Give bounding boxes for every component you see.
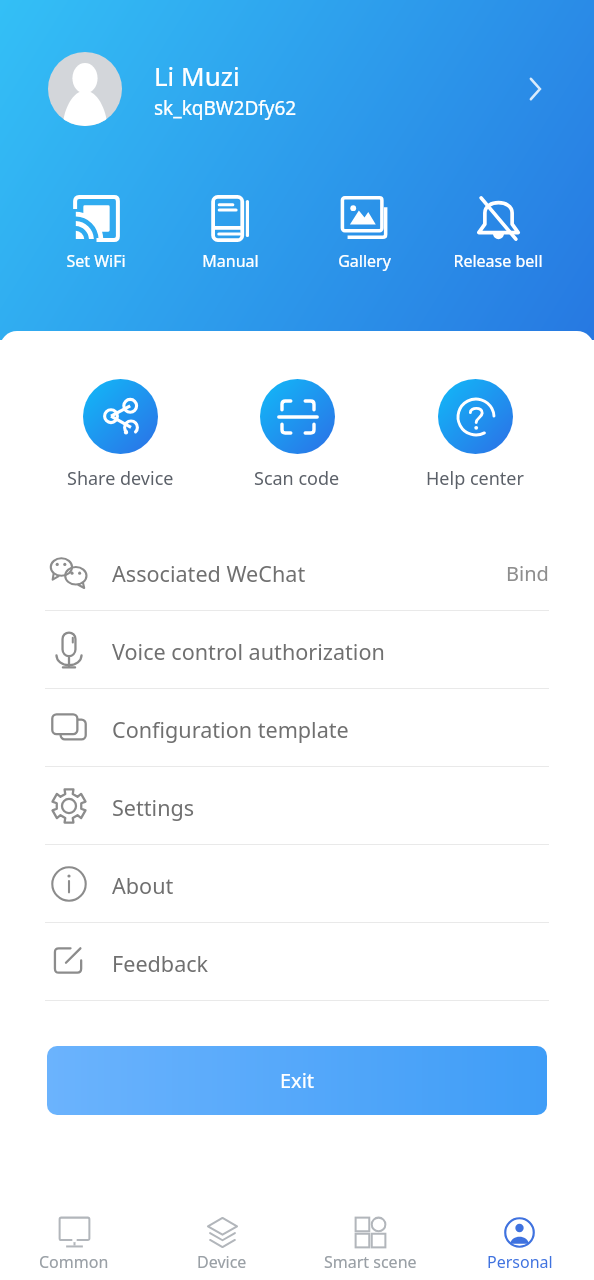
- button[interactable]: Settings: [45, 767, 549, 844]
- staticText: Smart scene: [324, 1251, 417, 1273]
- button[interactable]: Personal: [445, 1192, 594, 1280]
- staticText: Li Muzi: [154, 58, 240, 93]
- staticText: Associated WeChat: [112, 559, 506, 588]
- staticText: About: [112, 871, 549, 900]
- staticText: Personal: [487, 1251, 553, 1273]
- staticText: Help center: [426, 466, 524, 491]
- button[interactable]: Device: [148, 1192, 296, 1280]
- button[interactable]: Smart scene: [296, 1192, 445, 1280]
- staticText: Release bell: [453, 250, 543, 272]
- staticText: sk_kqBW2Dfy62: [154, 95, 297, 121]
- other: Account details: [518, 71, 554, 107]
- button[interactable]: Release bell: [431, 195, 565, 272]
- button[interactable]: Scan code: [212, 379, 382, 491]
- button[interactable]: Gallery: [297, 195, 431, 272]
- button[interactable]: Share device: [35, 379, 205, 491]
- staticText: Share device: [67, 466, 174, 491]
- staticText: Exit: [280, 1067, 315, 1094]
- staticText: Manual: [202, 250, 259, 272]
- button[interactable]: Exit: [47, 1046, 547, 1115]
- staticText: Bind: [506, 560, 549, 587]
- button[interactable]: Associated WeChat: [45, 533, 549, 610]
- staticText: Scan code: [254, 466, 340, 491]
- staticText: Settings: [112, 793, 549, 822]
- staticText: Common: [39, 1251, 109, 1273]
- button[interactable]: Feedback: [45, 923, 549, 1000]
- button[interactable]: Configuration template: [45, 689, 549, 766]
- staticText: Device: [197, 1251, 247, 1273]
- staticText: Feedback: [112, 949, 549, 978]
- button[interactable]: Common: [0, 1192, 148, 1280]
- staticText: Gallery: [338, 250, 391, 272]
- button[interactable]: Li Muzi: [0, 0, 594, 178]
- button[interactable]: Help center: [390, 379, 560, 491]
- staticText: Configuration template: [112, 715, 549, 744]
- staticText: Voice control authorization: [112, 637, 549, 666]
- button[interactable]: Manual: [163, 195, 297, 272]
- button[interactable]: Voice control authorization: [45, 611, 549, 688]
- button[interactable]: Set WiFi: [29, 195, 163, 272]
- staticText: Set WiFi: [66, 250, 126, 272]
- button[interactable]: About: [45, 845, 549, 922]
